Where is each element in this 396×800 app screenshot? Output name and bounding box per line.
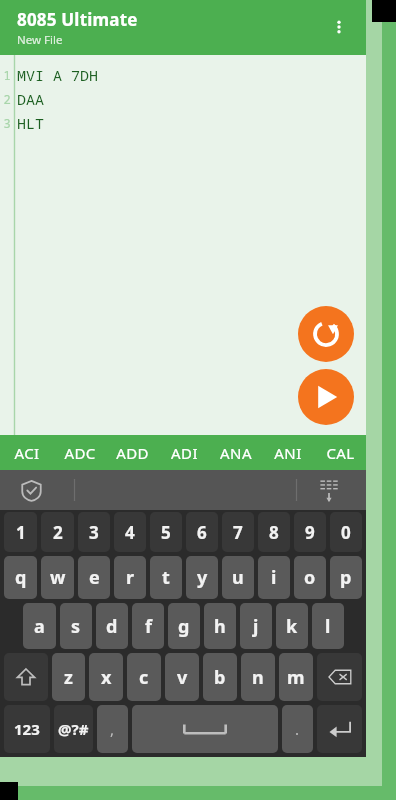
staticText: 3 bbox=[3, 115, 11, 131]
staticText: 9 bbox=[305, 521, 315, 544]
button[interactable]: ADI bbox=[158, 435, 210, 470]
button[interactable]: Hide keyboard bbox=[312, 473, 346, 507]
staticText: 6 bbox=[197, 521, 207, 544]
button[interactable]: Run bbox=[298, 369, 354, 425]
button[interactable]: 1 bbox=[4, 512, 37, 552]
staticText: m bbox=[287, 665, 305, 690]
button[interactable]: e bbox=[78, 556, 110, 599]
button[interactable]: o bbox=[294, 556, 326, 599]
button[interactable]: f bbox=[132, 603, 164, 649]
button[interactable]: t bbox=[150, 556, 182, 599]
staticText: d bbox=[106, 614, 118, 639]
staticText: o bbox=[304, 565, 316, 590]
button[interactable]: u bbox=[222, 556, 254, 599]
button[interactable]: Backspace bbox=[317, 653, 362, 701]
button[interactable]: ADC bbox=[53, 435, 106, 470]
staticText: 0 bbox=[341, 521, 351, 544]
button[interactable]: 123 bbox=[4, 705, 50, 753]
button[interactable]: p bbox=[330, 556, 362, 599]
staticText: e bbox=[89, 565, 100, 590]
staticText: r bbox=[126, 565, 135, 590]
button[interactable]: @?# bbox=[54, 705, 93, 753]
staticText: t bbox=[162, 565, 170, 590]
staticText: s bbox=[71, 614, 81, 639]
staticText: j bbox=[253, 614, 259, 639]
staticText: 2 bbox=[53, 521, 63, 544]
staticText: ACI bbox=[14, 443, 40, 463]
staticText: v bbox=[177, 665, 188, 690]
staticText: 4 bbox=[125, 521, 135, 544]
staticText: ADD bbox=[116, 443, 149, 463]
button[interactable]: 7 bbox=[222, 512, 254, 552]
button[interactable]: , bbox=[97, 705, 128, 753]
button[interactable]: q bbox=[4, 556, 37, 599]
button[interactable]: ANA bbox=[210, 435, 262, 470]
button[interactable]: Enter bbox=[317, 705, 362, 753]
button[interactable]: Secure input bbox=[14, 473, 48, 507]
button[interactable]: 8 bbox=[258, 512, 290, 552]
button[interactable]: m bbox=[279, 653, 313, 701]
button[interactable]: ANI bbox=[262, 435, 314, 470]
staticText: 8 bbox=[269, 521, 279, 544]
staticText: k bbox=[286, 614, 298, 639]
button[interactable]: y bbox=[186, 556, 218, 599]
button[interactable]: 5 bbox=[150, 512, 182, 552]
button[interactable]: g bbox=[168, 603, 200, 649]
button[interactable]: w bbox=[41, 556, 74, 599]
staticText: ADC bbox=[64, 443, 96, 463]
staticText: h bbox=[214, 614, 226, 639]
button[interactable]: 0 bbox=[330, 512, 362, 552]
staticText: New File bbox=[17, 32, 63, 48]
button[interactable]: r bbox=[114, 556, 146, 599]
button[interactable]: h bbox=[204, 603, 236, 649]
button[interactable]: c bbox=[127, 653, 161, 701]
button[interactable]: More options bbox=[318, 6, 360, 48]
button[interactable]: CAL bbox=[314, 435, 366, 470]
button[interactable]: ACI bbox=[0, 435, 53, 470]
staticText: c bbox=[139, 665, 149, 690]
button[interactable]: v bbox=[165, 653, 199, 701]
button[interactable]: ADD bbox=[106, 435, 158, 470]
button[interactable]: l bbox=[312, 603, 344, 649]
button[interactable]: 4 bbox=[114, 512, 146, 552]
staticText: y bbox=[197, 565, 208, 590]
button[interactable]: x bbox=[89, 653, 123, 701]
button[interactable]: 9 bbox=[294, 512, 326, 552]
button[interactable]: 2 bbox=[41, 512, 74, 552]
staticText: 2 bbox=[3, 91, 11, 107]
button[interactable]: Shift bbox=[4, 653, 48, 701]
staticText: 1 bbox=[3, 67, 11, 83]
button[interactable]: n bbox=[241, 653, 275, 701]
button[interactable]: s bbox=[60, 603, 92, 649]
staticText: g bbox=[178, 614, 190, 639]
staticText: 8085 Ultimate bbox=[17, 8, 138, 31]
staticText: w bbox=[50, 565, 66, 590]
staticText: u bbox=[232, 565, 244, 590]
button[interactable]: d bbox=[96, 603, 128, 649]
button[interactable]: i bbox=[258, 556, 290, 599]
button[interactable]: j bbox=[240, 603, 272, 649]
button[interactable]: b bbox=[203, 653, 237, 701]
staticText: z bbox=[64, 665, 73, 690]
staticText: MVI A 7DH bbox=[17, 65, 99, 85]
staticText: ADI bbox=[171, 443, 198, 463]
button[interactable]: Reset bbox=[298, 306, 354, 362]
staticText: l bbox=[325, 614, 331, 639]
staticText: 123 bbox=[14, 719, 40, 739]
staticText: b bbox=[214, 665, 226, 690]
staticText: , bbox=[110, 719, 115, 739]
button[interactable]: k bbox=[276, 603, 308, 649]
button[interactable]: a bbox=[23, 603, 56, 649]
button[interactable]: 6 bbox=[186, 512, 218, 552]
button[interactable]: . bbox=[282, 705, 313, 753]
staticText: p bbox=[340, 565, 352, 590]
staticText: 5 bbox=[161, 521, 171, 544]
staticText: i bbox=[271, 565, 277, 590]
button[interactable]: 3 bbox=[78, 512, 110, 552]
staticText: f bbox=[145, 614, 152, 639]
button[interactable]: Space bbox=[132, 705, 278, 753]
staticText: q bbox=[15, 565, 27, 590]
staticText: . bbox=[295, 719, 300, 739]
staticText: @?# bbox=[58, 719, 89, 739]
button[interactable]: z bbox=[52, 653, 85, 701]
